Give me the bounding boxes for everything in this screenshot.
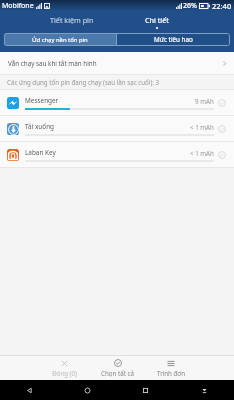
button[interactable]: Đóng (0) <box>37 356 91 380</box>
button[interactable]: Laban Key <box>0 142 234 168</box>
button[interactable]: Tiết kiệm pin <box>29 11 114 31</box>
staticText: Laban Key <box>25 148 56 157</box>
staticText: < 1 mAh <box>190 149 214 157</box>
staticText: Mức tiêu hao <box>154 35 193 44</box>
staticText: Đóng (0) <box>52 369 77 377</box>
staticText: Trình đơn <box>157 369 185 377</box>
button[interactable]: Chọn tất cả <box>91 356 144 380</box>
staticText: < 1 mAh <box>190 123 214 131</box>
button[interactable]: Vẫn chạy sau khi tắt màn hình <box>0 52 234 74</box>
staticText: Chi tiết <box>145 15 169 25</box>
button[interactable]: Mức tiêu hao <box>117 33 230 46</box>
staticText: 26% <box>183 1 197 11</box>
button[interactable]: Trình đơn <box>144 356 197 380</box>
staticText: Tải xuống <box>25 122 55 131</box>
staticText: Messenger <box>25 96 59 105</box>
button[interactable]: Ứd chạy nền tốn pin <box>4 33 116 46</box>
button[interactable]: Messenger <box>0 90 234 116</box>
staticText: Chọn tất cả <box>101 369 134 377</box>
button[interactable]: Recent apps <box>116 380 175 400</box>
staticText: Tiết kiệm pin <box>50 15 94 25</box>
staticText: 22:40 <box>212 1 232 11</box>
staticText: Mobifone <box>2 1 34 11</box>
staticText: 9 mAh <box>195 97 214 105</box>
staticText: Các ứng dụng tốn pin đang chạy (sau lần … <box>7 78 160 86</box>
staticText: Vẫn chạy sau khi tắt màn hình <box>8 59 97 68</box>
staticText: Ứd chạy nền tốn pin <box>32 36 88 44</box>
button[interactable]: Tải xuống <box>0 116 234 142</box>
button[interactable]: Chi tiết <box>114 11 199 31</box>
button[interactable]: Home <box>58 380 116 400</box>
button[interactable]: Hide keyboard <box>175 380 234 400</box>
button[interactable]: Back <box>0 380 58 400</box>
